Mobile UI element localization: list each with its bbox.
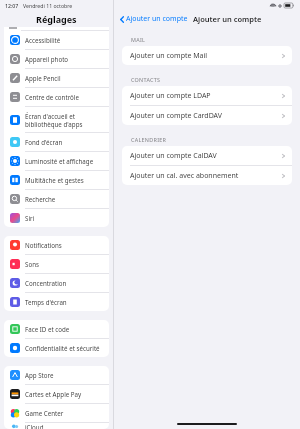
staticText: Notifications (25, 241, 62, 249)
button[interactable]: Luminosité et affichage (4, 152, 109, 171)
button[interactable]: Centre de contrôle (4, 88, 109, 107)
button[interactable]: Appareil photo (4, 50, 109, 69)
button[interactable]: Ajouter un compte Mail (122, 46, 292, 65)
staticText: Accessibilité (25, 36, 61, 44)
staticText: Réglages (36, 13, 77, 25)
button[interactable]: Cartes et Apple Pay (4, 385, 109, 404)
button[interactable]: Écran d'accueil et (4, 107, 109, 133)
staticText: Confidentialité et sécurité (25, 344, 100, 352)
staticText: Face ID et code (25, 325, 70, 333)
staticText: bibliothèque d'apps (25, 120, 83, 128)
button[interactable]: Apple Pencil (4, 69, 109, 88)
staticText: Écran d'accueil et (25, 112, 75, 120)
button[interactable]: Ajouter un compte CalDAV (122, 146, 292, 166)
staticText: Ajouter un compte Mail (130, 51, 208, 61)
staticText: Temps d'écran (25, 298, 67, 306)
staticText: Concentration (25, 279, 67, 287)
staticText: Ajouter un cal. avec abonnement (130, 171, 239, 181)
staticText: MAIL (131, 36, 146, 43)
button[interactable]: Concentration (4, 274, 109, 293)
staticText: Siri (25, 214, 35, 222)
button[interactable]: Siri (4, 209, 109, 227)
staticText: Appareil photo (25, 55, 69, 63)
staticText: Apple Pencil (25, 74, 61, 82)
button[interactable]: Fond d'écran (4, 133, 109, 152)
staticText: 12:07 (5, 2, 19, 9)
staticText: Fond d'écran (25, 138, 63, 146)
button[interactable]: Ajouter un compte CardDAV (122, 106, 292, 125)
button[interactable]: Notifications (4, 236, 109, 255)
button[interactable]: Confidentialité et sécurité (4, 339, 109, 357)
staticText: Vendredi 11 octobre (23, 2, 73, 9)
staticText: Sons (25, 260, 39, 268)
staticText: Ajouter un compte (193, 14, 262, 24)
staticText: Ajouter un compte (126, 14, 188, 24)
button[interactable]: iCloud (4, 423, 109, 429)
staticText: Ajouter un compte CalDAV (130, 151, 217, 161)
staticText: Recherche (25, 195, 56, 203)
staticText: Multitâche et gestes (25, 176, 84, 184)
button[interactable]: Game Center (4, 404, 109, 423)
button[interactable]: App Store (4, 366, 109, 385)
staticText: Luminosité et affichage (25, 157, 94, 165)
staticText: Game Center (25, 409, 64, 417)
button[interactable]: Temps d'écran (4, 293, 109, 311)
staticText: CALENDRIER (131, 136, 167, 143)
staticText: Ajouter un compte CardDAV (130, 111, 223, 121)
button[interactable]: Accessibilité (4, 31, 109, 50)
staticText: Ajouter un compte LDAP (130, 91, 211, 101)
button[interactable]: Retour (119, 14, 189, 24)
button[interactable]: Ajouter un compte LDAP (122, 86, 292, 106)
button[interactable]: Sons (4, 255, 109, 274)
staticText: Centre de contrôle (25, 93, 79, 101)
button[interactable]: Face ID et code (4, 320, 109, 339)
staticText: iCloud (25, 423, 44, 429)
staticText: App Store (25, 371, 54, 379)
button[interactable]: Recherche (4, 190, 109, 209)
button[interactable]: Multitâche et gestes (4, 171, 109, 190)
button[interactable]: Ajouter un cal. avec abonnement (122, 166, 292, 185)
staticText: CONTACTS (131, 76, 161, 83)
staticText: Cartes et Apple Pay (25, 390, 82, 398)
